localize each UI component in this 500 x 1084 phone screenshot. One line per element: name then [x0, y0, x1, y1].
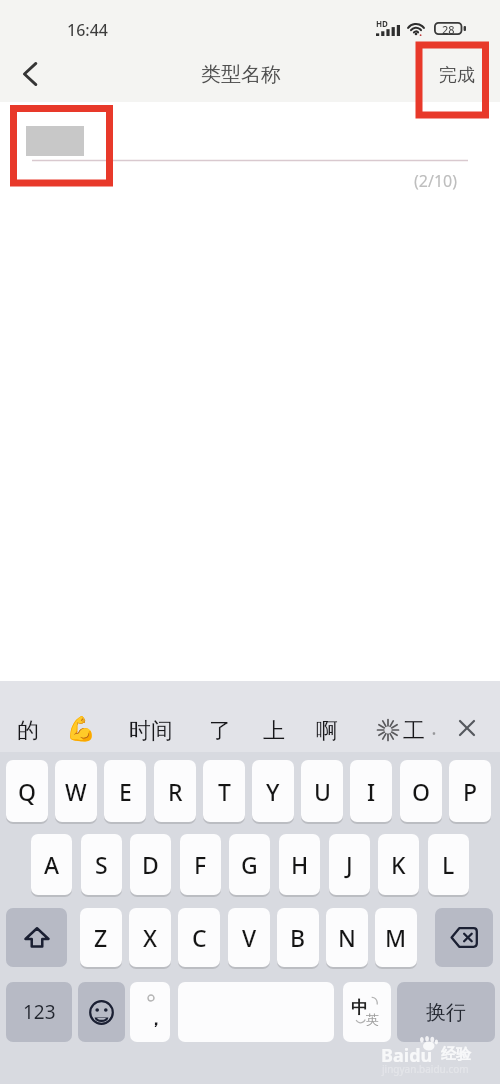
staticText: 时间	[129, 717, 173, 745]
button[interactable]: N	[326, 908, 368, 967]
button[interactable]: M	[375, 908, 417, 967]
button[interactable]: D	[130, 834, 171, 895]
staticText: O	[412, 776, 431, 807]
button[interactable]: Chinese English toggle	[343, 982, 391, 1042]
button[interactable]: H	[279, 834, 320, 895]
staticText: R	[168, 776, 183, 807]
button[interactable]: Z	[80, 908, 122, 967]
staticText: S	[95, 849, 108, 880]
staticText: E	[119, 776, 132, 807]
button[interactable]: 的	[17, 717, 39, 745]
staticText: jingyan.baidu.com	[382, 1062, 469, 1076]
button[interactable]: V	[228, 908, 270, 967]
staticText: 了	[209, 717, 231, 745]
staticText: V	[242, 922, 257, 953]
staticText: P	[463, 776, 478, 807]
button[interactable]: F	[180, 834, 221, 895]
staticText: K	[391, 849, 406, 880]
staticText: T	[218, 776, 231, 807]
button[interactable]: X	[129, 908, 171, 967]
button[interactable]: 换行	[397, 982, 495, 1042]
staticText: 16:44	[67, 19, 108, 41]
button[interactable]: 完成	[429, 47, 484, 103]
button[interactable]: Emoji	[78, 982, 125, 1042]
staticText: F	[194, 849, 207, 880]
button[interactable]: W	[55, 760, 97, 822]
button[interactable]: Back	[4, 46, 56, 102]
staticText: L	[442, 849, 455, 880]
staticText: 类型名称	[201, 62, 281, 87]
staticText: 工	[403, 717, 425, 745]
button[interactable]: C	[178, 908, 220, 967]
button[interactable]: Close	[448, 710, 486, 746]
button[interactable]: Shift	[6, 908, 67, 967]
staticText: 上	[263, 717, 285, 745]
staticText: Z	[94, 922, 108, 953]
staticText: ，	[147, 1009, 164, 1030]
button[interactable]: Y	[252, 760, 294, 822]
staticText: U	[314, 776, 331, 807]
button[interactable]: U	[301, 760, 343, 822]
staticText: I	[367, 776, 376, 807]
staticText: 123	[23, 999, 56, 1025]
staticText: 换行	[426, 1000, 466, 1025]
staticText: 中	[351, 997, 368, 1018]
staticText: A	[44, 849, 60, 880]
staticText: Y	[266, 776, 280, 807]
button[interactable]: E	[104, 760, 146, 822]
staticText: G	[241, 849, 258, 880]
button[interactable]: L	[428, 834, 469, 895]
button[interactable]: 工	[403, 717, 425, 745]
button[interactable]: 时间	[129, 717, 173, 745]
staticText: 啊	[316, 717, 338, 745]
staticText: ·	[431, 717, 437, 747]
button[interactable]: Q	[6, 760, 48, 822]
staticText: HD	[376, 18, 388, 29]
staticText: 的	[17, 717, 39, 745]
button[interactable]: Backspace	[435, 908, 493, 967]
button[interactable]: T	[203, 760, 245, 822]
button[interactable]: ，	[130, 982, 170, 1042]
staticText: C	[192, 922, 207, 953]
staticText: Baidu	[381, 1043, 433, 1068]
staticText: D	[142, 849, 159, 880]
button[interactable]: G	[229, 834, 270, 895]
button[interactable]: P	[449, 760, 491, 822]
staticText: 28	[442, 22, 455, 37]
button[interactable]: I	[350, 760, 392, 822]
button[interactable]: J	[329, 834, 370, 895]
button[interactable]: K	[378, 834, 419, 895]
staticText: J	[346, 849, 353, 880]
button[interactable]: 上	[263, 717, 285, 745]
staticText: 经验	[441, 1045, 471, 1064]
button[interactable]: S	[81, 834, 122, 895]
staticText: M	[385, 922, 407, 953]
button[interactable]: A	[31, 834, 72, 895]
button[interactable]: B	[277, 908, 319, 967]
button[interactable]: 123	[6, 982, 72, 1042]
button[interactable]: 了	[209, 717, 231, 745]
staticText: (2/10)	[414, 170, 458, 192]
button[interactable]: 啊	[316, 717, 338, 745]
staticText: 英	[366, 1011, 379, 1027]
button[interactable]: O	[400, 760, 442, 822]
staticText: H	[291, 849, 309, 880]
staticText: 💪	[66, 715, 96, 743]
staticText: N	[338, 922, 356, 953]
staticText: Q	[18, 776, 37, 807]
button[interactable]: R	[154, 760, 196, 822]
staticText: W	[65, 776, 87, 807]
staticText: X	[143, 922, 158, 953]
staticText: 完成	[439, 64, 475, 87]
staticText: B	[290, 922, 306, 953]
